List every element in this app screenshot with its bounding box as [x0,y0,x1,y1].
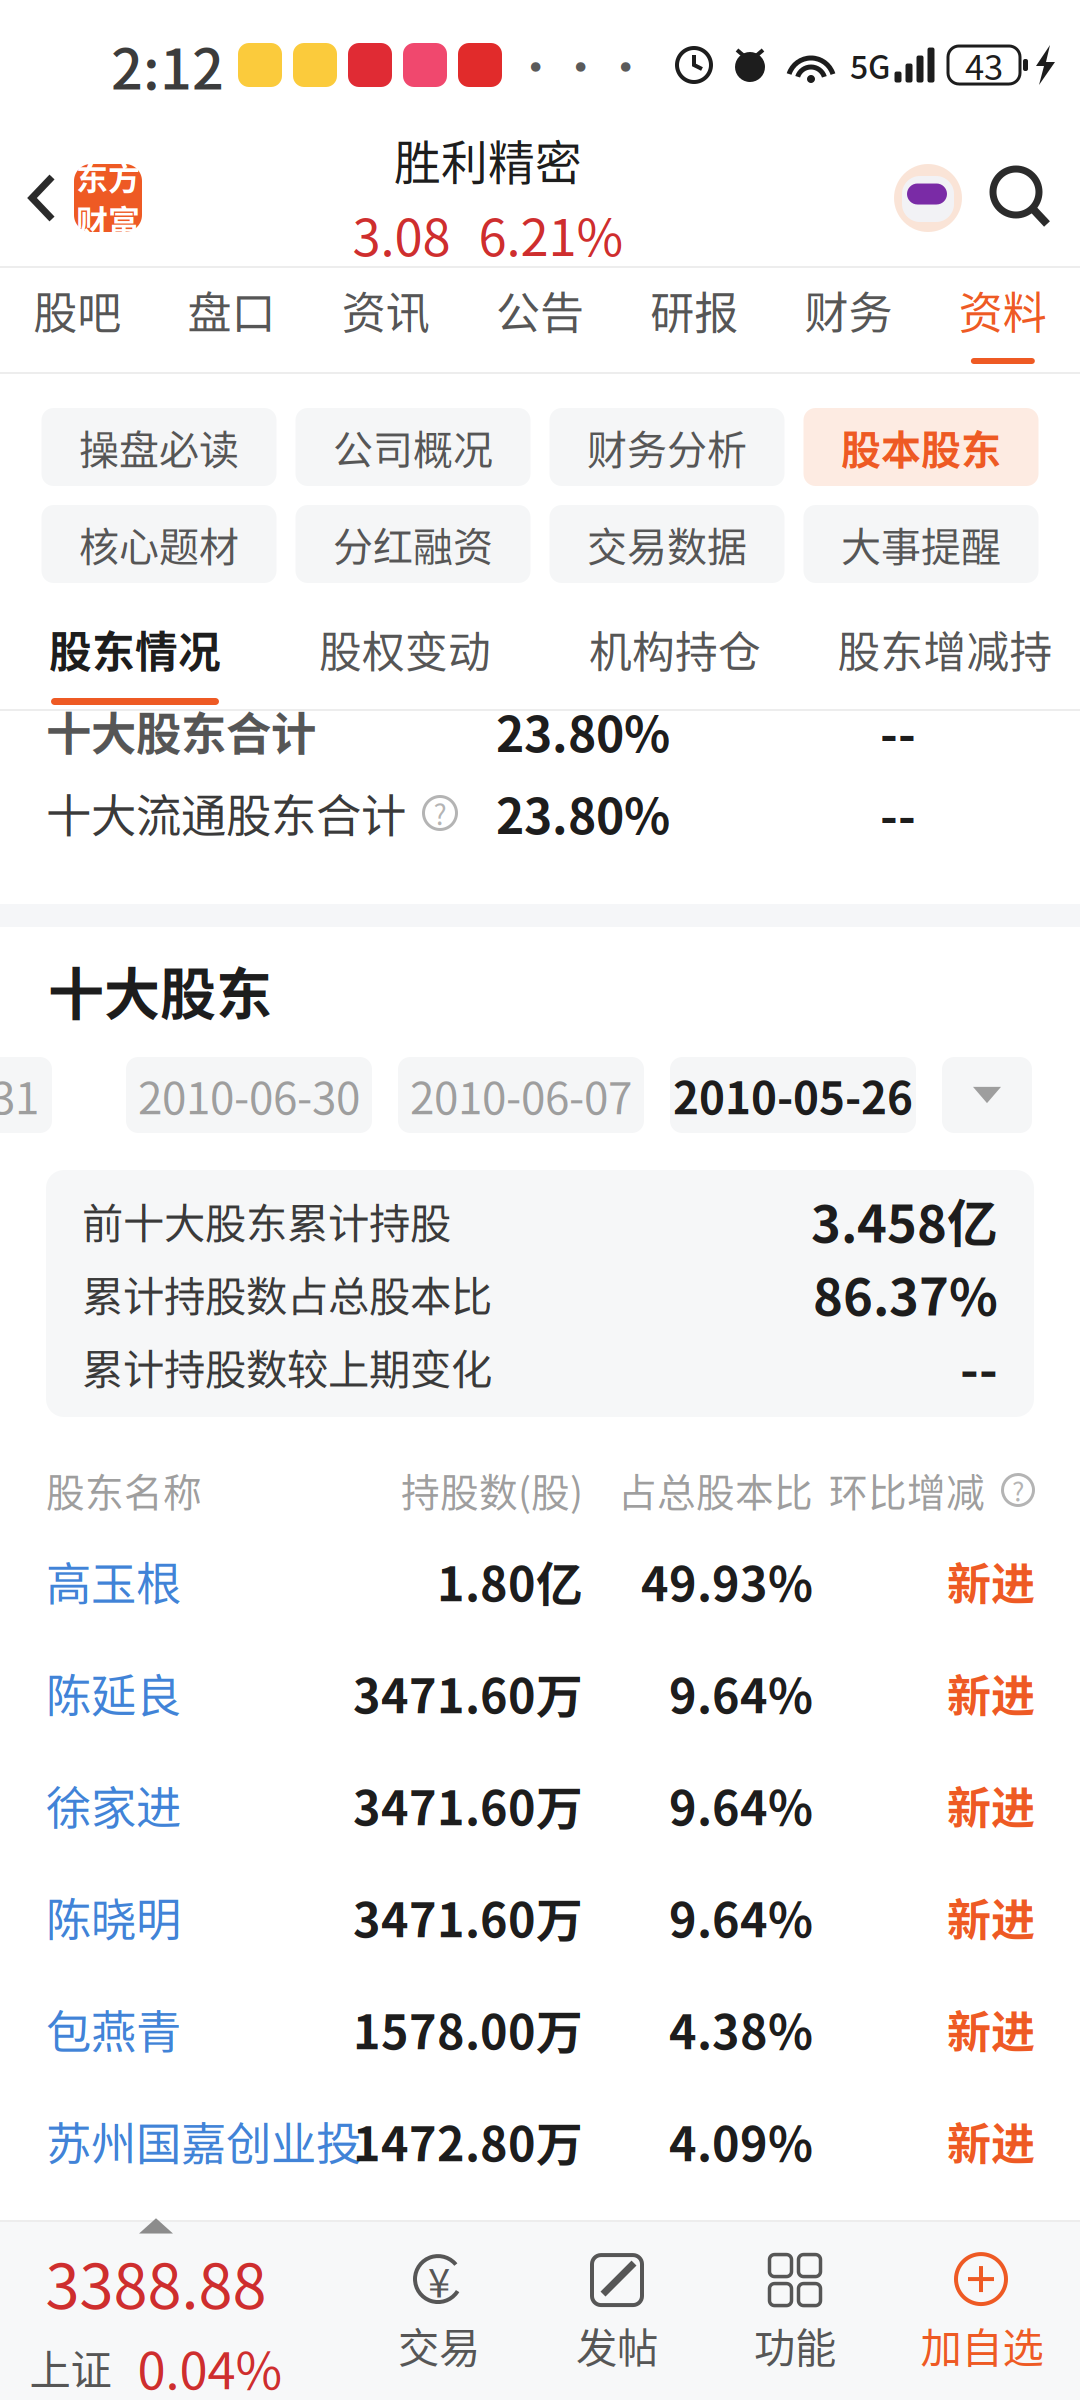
staticText: 1578.00万 [353,1995,583,2063]
staticText: 公司概况 [333,418,493,476]
button[interactable]: 大事提醒 [803,505,1038,583]
staticText: ··· [513,32,648,98]
staticText: 新进 [947,2109,1035,2173]
staticText: 财务分析 [587,418,747,476]
button[interactable]: 研报 [617,268,771,372]
button[interactable]: 2010-06-07 [398,1057,644,1133]
button[interactable]: 搜索 [962,166,1080,230]
button[interactable]: 核心题材 [41,505,276,583]
staticText: 2010-06-30 [138,1063,360,1127]
staticText: 功能 [754,2315,836,2375]
staticText: 资讯 [342,278,430,342]
staticText: 股东名称 [46,1462,202,1518]
staticText: 分红融资 [333,515,493,573]
staticText: 研报 [650,278,738,342]
button[interactable]: 功能 [706,2235,884,2387]
button[interactable]: 财务分析 [549,408,784,486]
staticText: ? [1012,1471,1024,1509]
staticText: 加自选 [920,2315,1043,2375]
staticText: 包燕青 [46,1996,181,2062]
staticText: 3471.60万 [353,1771,583,1839]
staticText: 2010-06-07 [410,1063,632,1127]
button[interactable]: 苏州国嘉创业投 [0,2085,1080,2197]
staticText: 9.64% [669,1883,813,1951]
button[interactable]: 股吧 [0,268,154,372]
button[interactable]: 徐家进 [0,1749,1080,1861]
staticText: 股权变动 [319,618,491,680]
button[interactable]: 发帖 [528,2235,706,2387]
staticText: 财务 [805,278,893,342]
staticText: 累计持股数占总股本比 [82,1264,492,1323]
staticText: 陈晓明 [46,1884,181,1950]
staticText: 3.08 [352,197,450,270]
button[interactable]: 操盘必读 [41,408,276,486]
staticText: 新进 [947,1997,1035,2061]
button[interactable]: 财务 [771,268,926,372]
button[interactable]: 公司概况 [295,408,530,486]
button[interactable]: 更多日期 [942,1057,1032,1133]
staticText: 2010-05-26 [673,1063,913,1127]
button[interactable]: ¥ [350,2235,528,2387]
button[interactable]: 东方财富 [74,164,142,232]
staticText: 股吧 [33,278,121,342]
staticText: 累计持股数较上期变化 [82,1337,492,1396]
staticText: 股东增减持 [837,618,1052,680]
staticText: 盘口 [187,278,275,342]
staticText: 机构持仓 [589,618,761,680]
staticText: 1.80亿 [437,1547,583,1615]
button[interactable]: 31 [0,1057,52,1133]
button[interactable]: 资讯 [309,268,463,372]
staticText: 持股数(股) [401,1462,583,1518]
button[interactable]: 陈延良 [0,1637,1080,1749]
button[interactable]: 陈晓明 [0,1861,1080,1973]
staticText: 苏州国嘉创业投 [46,2108,361,2174]
staticText: 6.21% [478,197,623,270]
staticText: 核心题材 [79,515,239,573]
button[interactable]: 股东情况 [0,599,270,709]
staticText: -- [960,1330,998,1403]
button[interactable]: 股东增减持 [810,599,1080,709]
staticText: 胜利精密 [394,125,582,193]
staticText: 3471.60万 [353,1883,583,1951]
staticText: 高玉根 [46,1548,181,1614]
button[interactable]: 公告 [463,268,617,372]
staticText: -- [880,696,916,766]
staticText: 0.04% [137,2330,282,2400]
staticText: 4.38% [669,1995,813,2063]
staticText: 资料 [959,278,1047,342]
staticText: -- [880,778,916,848]
staticText: 徐家进 [46,1772,181,1838]
staticText: 1472.80万 [353,2107,583,2175]
button[interactable]: 2010-06-30 [126,1057,372,1133]
button[interactable]: 返回 [0,143,74,253]
button[interactable]: 机构持仓 [540,599,810,709]
staticText: 操盘必读 [79,418,239,476]
staticText: 环比增减 [829,1462,985,1518]
button[interactable]: 交易数据 [549,505,784,583]
staticText: 股本股东 [841,418,1001,476]
staticText: 23.80% [496,778,670,848]
staticText: 前十大股东累计持股 [82,1191,451,1250]
button[interactable]: 盘口 [154,268,309,372]
staticText: 3.458亿 [811,1184,998,1257]
button[interactable]: 2010-05-26 [670,1057,916,1133]
staticText: 2:12 [111,24,224,106]
staticText: 发帖 [576,2315,658,2375]
staticText: 陈延良 [46,1660,181,1726]
button[interactable]: 股权变动 [270,599,540,709]
button[interactable]: 智能助手 [894,164,962,232]
staticText: 49.93% [641,1547,813,1615]
button[interactable]: 加自选 [884,2235,1080,2387]
button[interactable]: 包燕青 [0,1973,1080,2085]
button[interactable]: 高玉根 [0,1525,1080,1637]
staticText: 新进 [947,1661,1035,1725]
button[interactable]: 资料 [926,268,1080,372]
staticText: 占总股本比 [618,1462,813,1518]
staticText: 十大股东 [48,949,272,1031]
staticText: 5G [850,42,890,88]
staticText: 大事提醒 [841,515,1001,573]
button[interactable]: 上证指数 [0,2235,312,2387]
button[interactable]: 分红融资 [295,505,530,583]
staticText: 上证 [29,2337,111,2397]
button[interactable]: 股本股东 [803,408,1038,486]
